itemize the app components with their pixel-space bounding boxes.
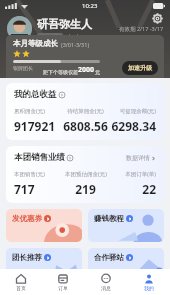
staticText: 消息 [101,285,111,291]
button[interactable]: 发优惠券 [6,209,82,242]
staticText: 可提现余额(元) [119,107,156,115]
staticText: 917921 [14,118,56,134]
staticText: 22 [142,181,156,197]
staticText: 219 [75,181,96,197]
staticText: 6808.56 [63,118,108,134]
staticText: 发优惠券 [12,214,42,223]
staticText: 累积佣金(元) [14,107,45,115]
button[interactable]: 加速升级 [122,61,158,75]
staticText: 元 [95,69,100,75]
staticText: 订单 [58,285,68,291]
button[interactable]: 消息 [84,269,127,295]
staticText: 本月等级成长 [13,39,58,48]
button[interactable]: 本团销售业绩 [6,146,164,203]
staticText: 本团订单(单) [125,170,156,178]
staticText: 赚钱教程 [94,214,124,223]
staticText: 合作驿站 [94,253,124,262]
staticText: 待结算佣金(元) [67,107,104,115]
staticText: 团长推荐 [12,253,42,262]
staticText: 有效期 2/17 -3/17 [119,25,164,33]
button[interactable]: 本月等级成长 [6,35,164,78]
staticText: 本团销售(元) [14,170,45,178]
button[interactable]: 我的 [127,269,170,295]
staticText: 首页 [16,285,26,291]
button[interactable]: 数据详情 [126,154,156,162]
staticText: 717 [14,181,35,197]
button[interactable]: 首页 [0,269,42,295]
staticText: 银牌团长 [13,65,33,71]
button[interactable]: 合作驿站 [88,248,164,281]
staticText: 研吾弥生人 [37,17,92,31]
staticText: 6298.34 [111,118,156,134]
staticText: 本团销售业绩 [14,152,65,163]
staticText: 加速升级 [128,64,152,72]
staticText: 2000 [78,65,95,75]
staticText: 银牌团长 [40,34,60,40]
button[interactable]: Profile avatar [7,16,32,41]
staticText: 我的总收益 [14,89,57,100]
staticText: 10:23 [82,2,98,10]
staticText: (3/01-3/31) [61,41,90,48]
button[interactable]: 赚钱教程 [88,209,164,242]
button[interactable]: 我的总收益 [6,83,164,140]
button[interactable]: 订单 [42,269,84,295]
staticText: 我的 [144,285,154,291]
button[interactable]: 团长推荐 [6,248,82,281]
staticText: 本团预估佣金(元) [65,170,107,178]
staticText: 数据详情 [126,154,150,162]
staticText: 距下个等级仅差 [43,69,78,75]
button[interactable]: Settings [151,12,164,25]
